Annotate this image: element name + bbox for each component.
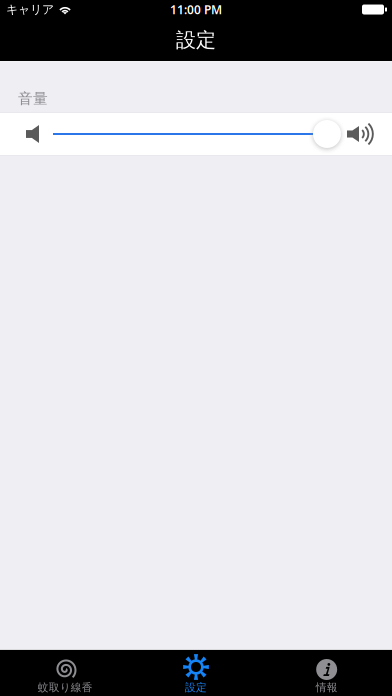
staticText: 蚊取り線香 (38, 681, 93, 694)
staticText: 情報 (316, 681, 338, 694)
staticText: 設定 (176, 28, 216, 52)
button[interactable]: 設定 (131, 650, 261, 696)
staticText: 11:00 PM (170, 1, 222, 17)
button[interactable]: 情報 (261, 650, 392, 696)
staticText: 設定 (185, 681, 207, 694)
button[interactable]: 音量 (0, 113, 392, 155)
button[interactable]: 蚊取り線香 (0, 650, 131, 696)
staticText: キャリア (6, 2, 54, 17)
staticText: 音量 (18, 89, 48, 107)
